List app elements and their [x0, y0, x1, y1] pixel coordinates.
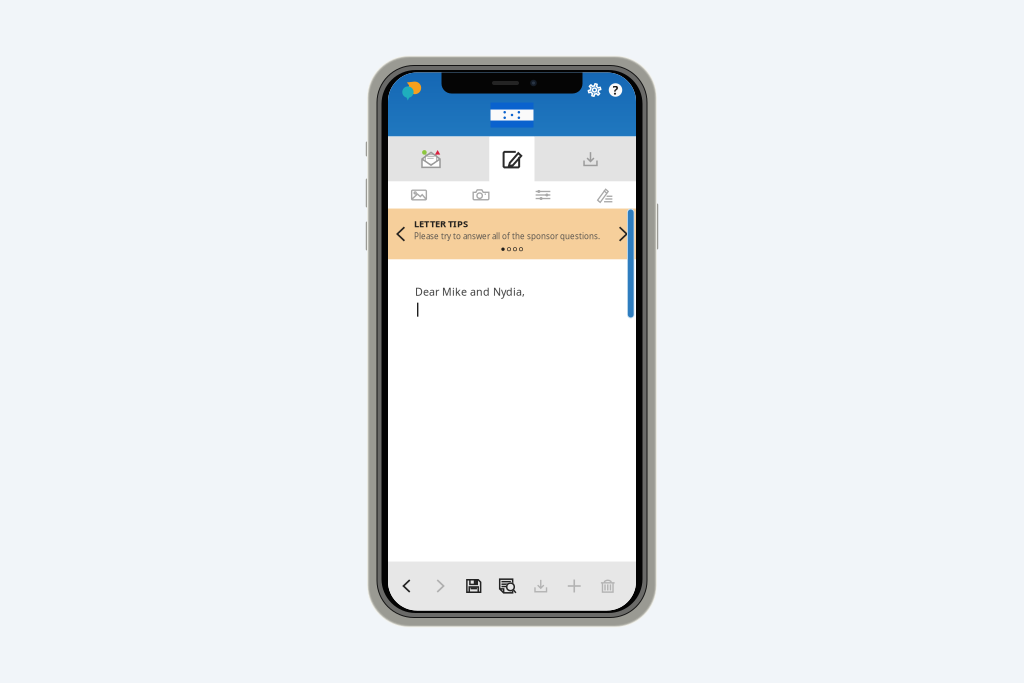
staticText: Please try to answer all of the sponsor … [414, 231, 600, 241]
button[interactable]: Back [390, 564, 423, 608]
staticText: ? [612, 82, 618, 98]
button[interactable]: Save [457, 564, 490, 608]
button[interactable]: Photos [388, 181, 450, 208]
button[interactable]: Mail [388, 136, 489, 181]
button[interactable]: Delete [591, 564, 624, 608]
button[interactable]: Forward [423, 564, 457, 608]
button[interactable]: Help [607, 79, 624, 100]
button[interactable]: Preview [490, 564, 524, 608]
staticText: LETTER TIPS [414, 217, 468, 230]
button[interactable]: Previous tip [388, 208, 414, 259]
button[interactable]: Add [557, 564, 591, 608]
button[interactable]: Camera [450, 181, 512, 208]
button[interactable]: Download [524, 564, 557, 608]
button[interactable]: Settings [586, 79, 603, 100]
button[interactable]: Next tip [610, 208, 636, 259]
button[interactable]: Downloads [534, 136, 636, 181]
button[interactable]: Compose [489, 136, 534, 181]
button[interactable]: App home [400, 79, 423, 100]
staticText: Dear Mike and Nydia, [415, 284, 525, 299]
button[interactable]: Options [512, 181, 574, 208]
button[interactable]: Signature [574, 181, 636, 208]
